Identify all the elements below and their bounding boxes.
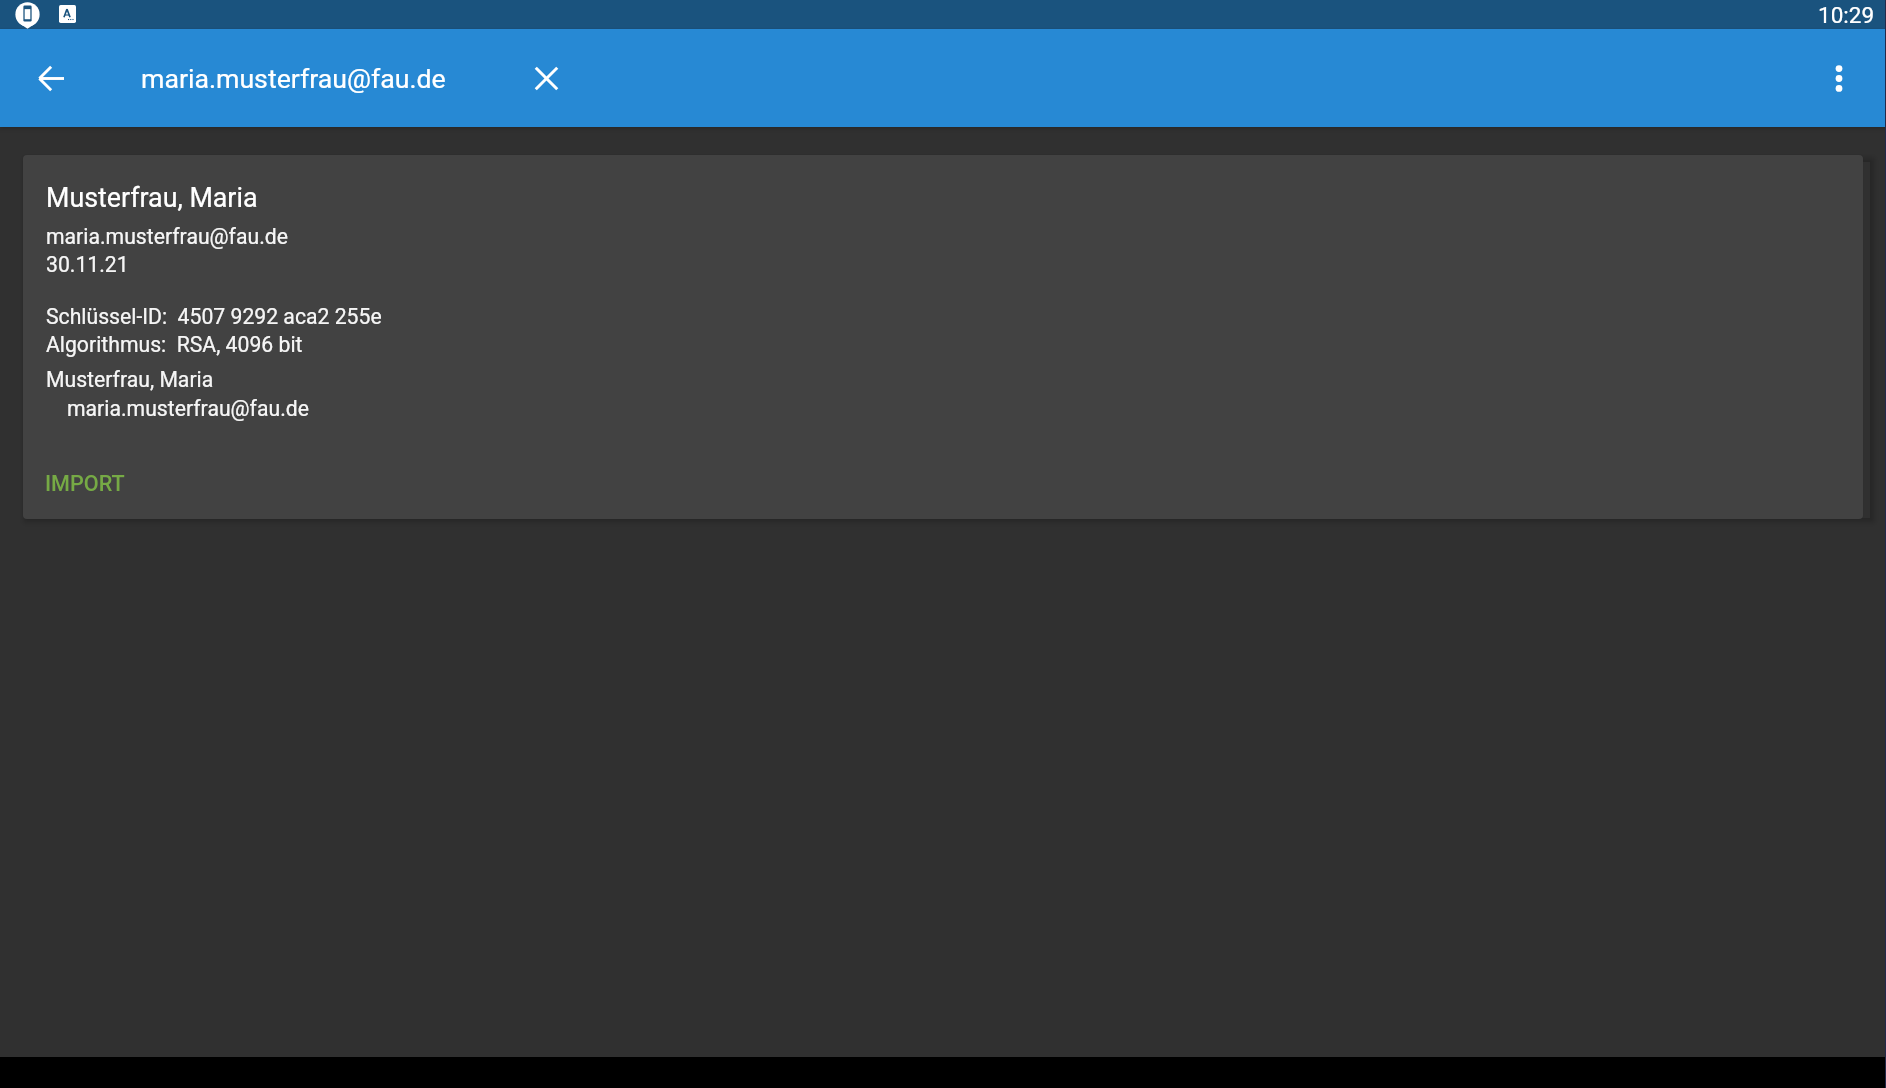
staticText: maria.musterfrau@fau.de [67, 396, 309, 421]
button[interactable]: More options [1805, 44, 1873, 112]
staticText: maria.musterfrau@fau.de [46, 224, 288, 249]
staticText: Musterfrau, Maria [46, 182, 258, 213]
button[interactable]: Clear search [514, 46, 578, 110]
staticText: 10:29 [1818, 2, 1875, 28]
staticText: Schlüssel-ID: 4507 9292 aca2 255e [46, 304, 382, 329]
staticText: 30.11.21 [46, 252, 129, 277]
button[interactable]: Back [15, 42, 87, 114]
staticText: Musterfrau, Maria [46, 367, 214, 392]
staticText: maria.musterfrau@fau.de [141, 63, 446, 94]
staticText: IMPORT [45, 471, 125, 496]
button[interactable]: IMPORT [44, 469, 126, 498]
staticText: Algorithmus: RSA, 4096 bit [46, 332, 303, 357]
